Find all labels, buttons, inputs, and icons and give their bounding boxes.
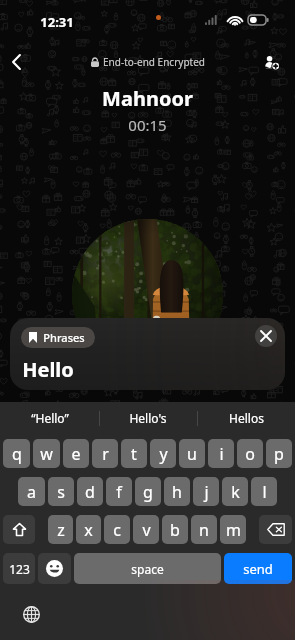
- staticText: s: [57, 481, 65, 503]
- staticText: f: [116, 481, 122, 503]
- button[interactable]: Close: [255, 325, 277, 347]
- button[interactable]: n: [191, 515, 217, 544]
- staticText: p: [274, 443, 284, 465]
- staticText: x: [84, 519, 93, 541]
- button[interactable]: Add participant: [255, 46, 287, 78]
- button[interactable]: Phrases: [21, 327, 95, 348]
- button[interactable]: 123: [3, 553, 35, 584]
- button[interactable]: f: [106, 477, 132, 506]
- staticText: i: [219, 443, 224, 465]
- staticText: 12:31: [40, 13, 74, 31]
- button[interactable]: t: [121, 439, 147, 468]
- button[interactable]: r: [92, 439, 118, 468]
- staticText: u: [187, 443, 197, 465]
- staticText: v: [142, 519, 151, 541]
- button[interactable]: q: [3, 439, 30, 468]
- button[interactable]: w: [33, 439, 60, 468]
- staticText: Hello: [22, 356, 74, 383]
- button[interactable]: p: [266, 439, 292, 468]
- staticText: 123: [9, 561, 30, 577]
- staticText: a: [27, 481, 36, 503]
- button[interactable]: x: [76, 515, 101, 544]
- staticText: b: [170, 519, 180, 541]
- staticText: y: [159, 443, 168, 465]
- button[interactable]: “Hello”: [0, 402, 99, 434]
- staticText: send: [243, 560, 273, 578]
- button[interactable]: s: [48, 477, 74, 506]
- staticText: j: [204, 481, 209, 503]
- staticText: w: [40, 443, 53, 465]
- staticText: h: [172, 481, 182, 503]
- button[interactable]: Back: [0, 46, 32, 78]
- button[interactable]: d: [77, 477, 103, 506]
- staticText: Mahnoor: [0, 85, 295, 112]
- staticText: Phrases: [43, 330, 85, 345]
- button[interactable]: Backspace: [259, 515, 292, 544]
- button[interactable]: u: [179, 439, 205, 468]
- button[interactable]: space: [74, 553, 221, 584]
- button[interactable]: a: [18, 477, 45, 506]
- staticText: Hellos: [229, 410, 264, 426]
- staticText: t: [131, 443, 137, 465]
- staticText: e: [71, 443, 81, 465]
- button[interactable]: Shift: [3, 515, 35, 544]
- staticText: m: [226, 519, 241, 541]
- button[interactable]: m: [220, 515, 246, 544]
- staticText: 00:15: [0, 115, 295, 135]
- button[interactable]: y: [150, 439, 176, 468]
- staticText: l: [262, 481, 267, 503]
- button[interactable]: o: [237, 439, 263, 468]
- staticText: space: [131, 561, 164, 577]
- staticText: z: [57, 519, 65, 541]
- staticText: r: [102, 443, 109, 465]
- button[interactable]: j: [193, 477, 219, 506]
- staticText: g: [143, 481, 153, 503]
- staticText: q: [12, 443, 22, 465]
- staticText: End-to-end Encrypted: [103, 55, 205, 69]
- button[interactable]: g: [135, 477, 161, 506]
- button[interactable]: e: [63, 439, 89, 468]
- button[interactable]: Change language: [20, 603, 42, 625]
- button[interactable]: Hello's: [99, 402, 197, 434]
- button[interactable]: h: [164, 477, 190, 506]
- staticText: d: [85, 481, 95, 503]
- staticText: n: [199, 519, 209, 541]
- button[interactable]: l: [251, 477, 277, 506]
- button[interactable]: v: [133, 515, 159, 544]
- staticText: “Hello”: [31, 410, 69, 426]
- staticText: o: [245, 443, 255, 465]
- button[interactable]: b: [162, 515, 188, 544]
- staticText: k: [231, 481, 240, 503]
- button[interactable]: send: [224, 553, 292, 584]
- button[interactable]: c: [104, 515, 130, 544]
- button[interactable]: z: [48, 515, 73, 544]
- staticText: c: [113, 519, 121, 541]
- staticText: Hello's: [129, 410, 167, 426]
- button[interactable]: Hellos: [197, 402, 295, 434]
- button[interactable]: k: [222, 477, 248, 506]
- button[interactable]: Emoji: [38, 553, 71, 584]
- button[interactable]: i: [208, 439, 234, 468]
